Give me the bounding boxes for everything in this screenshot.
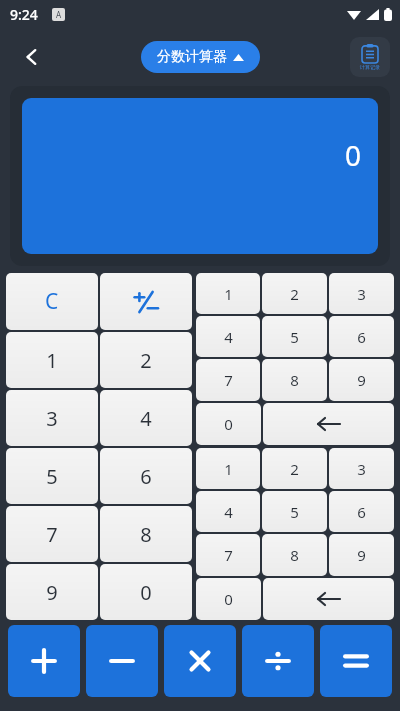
button[interactable]: Backspace [263, 578, 394, 620]
button[interactable]: 9 [329, 534, 394, 576]
staticText: 9 [46, 579, 58, 606]
staticText: 0 [224, 414, 233, 434]
staticText: 8 [290, 370, 299, 390]
button[interactable]: 9 [329, 359, 394, 401]
button[interactable]: C [6, 273, 98, 330]
button[interactable]: 8 [262, 359, 327, 401]
button[interactable]: 4 [196, 316, 260, 357]
button[interactable]: Equals [320, 625, 392, 697]
button[interactable]: 1 [196, 448, 260, 489]
button[interactable]: 0 [196, 578, 261, 620]
button[interactable]: 7 [196, 534, 260, 576]
button[interactable]: 6 [329, 491, 394, 532]
button[interactable]: 1 [6, 332, 98, 388]
staticText: 4 [224, 502, 233, 522]
staticText: A [56, 9, 62, 20]
button[interactable]: 2 [100, 332, 192, 388]
button[interactable]: 3 [6, 390, 98, 446]
button[interactable]: 7 [6, 506, 98, 562]
button[interactable]: 2 [262, 273, 327, 314]
staticText: 9 [357, 370, 366, 390]
button[interactable]: 5 [262, 316, 327, 357]
staticText: 2 [290, 284, 299, 304]
staticText: 6 [357, 327, 366, 347]
button[interactable]: 3 [329, 273, 394, 314]
staticText: 0 [345, 136, 362, 174]
button[interactable]: Plus [8, 625, 80, 697]
staticText: 分数计算器 [157, 48, 227, 66]
button[interactable]: 4 [196, 491, 260, 532]
staticText: 7 [46, 521, 58, 548]
button[interactable]: 计算记录 [350, 37, 390, 77]
button[interactable]: Back [12, 37, 52, 77]
button[interactable]: Minus [86, 625, 158, 697]
button[interactable]: Plus minus sign [100, 273, 192, 330]
button[interactable]: Multiply [164, 625, 236, 697]
staticText: 9 [357, 545, 366, 565]
staticText: 1 [224, 459, 233, 479]
button[interactable]: 8 [262, 534, 327, 576]
button[interactable]: 2 [262, 448, 327, 489]
button[interactable]: 0 [22, 98, 378, 254]
button[interactable]: Divide [242, 625, 314, 697]
staticText: 6 [357, 502, 366, 522]
button[interactable]: 5 [262, 491, 327, 532]
staticText: 5 [290, 502, 299, 522]
button[interactable]: 3 [329, 448, 394, 489]
button[interactable]: 6 [100, 448, 192, 504]
staticText: 7 [224, 370, 233, 390]
staticText: 3 [357, 284, 366, 304]
staticText: 0 [140, 579, 152, 606]
staticText: 4 [140, 405, 152, 432]
staticText: 8 [140, 521, 152, 548]
staticText: 6 [140, 463, 152, 490]
staticText: 0 [224, 589, 233, 609]
staticText: 5 [46, 463, 58, 490]
button[interactable]: 5 [6, 448, 98, 504]
button[interactable]: 1 [196, 273, 260, 314]
staticText: 3 [46, 405, 58, 432]
button[interactable]: 0 [196, 403, 261, 445]
button[interactable]: Backspace [263, 403, 394, 445]
staticText: 3 [357, 459, 366, 479]
button[interactable]: 6 [329, 316, 394, 357]
button[interactable]: 0 [100, 564, 192, 620]
button[interactable]: 9 [6, 564, 98, 620]
staticText: 1 [224, 284, 233, 304]
staticText: 7 [224, 545, 233, 565]
staticText: 计算记录 [360, 64, 380, 70]
staticText: 1 [46, 347, 58, 374]
staticText: 4 [224, 327, 233, 347]
button[interactable]: 7 [196, 359, 260, 401]
staticText: C [45, 287, 59, 316]
staticText: 9:24 [10, 5, 38, 24]
button[interactable]: 8 [100, 506, 192, 562]
staticText: 8 [290, 545, 299, 565]
button[interactable]: 4 [100, 390, 192, 446]
button[interactable]: 分数计算器 [141, 41, 260, 73]
staticText: 5 [290, 327, 299, 347]
staticText: 2 [290, 459, 299, 479]
staticText: 2 [140, 347, 152, 374]
